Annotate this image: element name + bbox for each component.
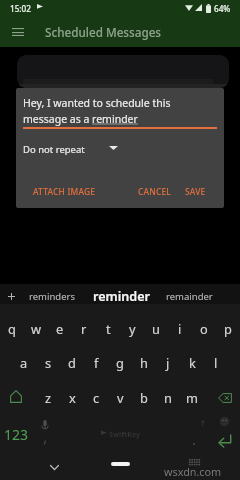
staticText: reminders bbox=[29, 290, 75, 303]
button[interactable]: o bbox=[192, 314, 216, 342]
button[interactable]: reminder bbox=[86, 286, 156, 306]
button[interactable]: h bbox=[132, 348, 156, 376]
button[interactable]: j bbox=[156, 348, 180, 376]
button[interactable]: Add to dictionary bbox=[3, 286, 19, 306]
button[interactable]: z bbox=[36, 383, 60, 411]
staticText: SAVE bbox=[185, 186, 206, 197]
button[interactable]: ATTACH IMAGE bbox=[23, 181, 105, 201]
button[interactable]: b bbox=[132, 383, 156, 411]
staticText: q bbox=[8, 320, 16, 337]
staticText: h bbox=[140, 354, 148, 371]
button[interactable]: y bbox=[120, 314, 144, 342]
button[interactable]: s bbox=[36, 348, 60, 376]
staticText: t bbox=[106, 320, 111, 337]
staticText: f bbox=[94, 354, 99, 371]
button[interactable]: n bbox=[156, 383, 180, 411]
staticText: m bbox=[186, 389, 198, 406]
staticText: r bbox=[81, 320, 87, 337]
button[interactable]: Open navigation drawer bbox=[5, 17, 31, 46]
button[interactable]: 123 bbox=[1, 420, 32, 448]
button[interactable]: c bbox=[84, 383, 108, 411]
button[interactable]: CANCEL bbox=[130, 181, 180, 201]
staticText: a bbox=[20, 354, 28, 371]
staticText: wsxdn.com bbox=[164, 464, 222, 479]
staticText: z bbox=[45, 389, 52, 406]
staticText: p bbox=[224, 320, 232, 337]
staticText: Hey, I wanted to schedule this message a… bbox=[23, 96, 171, 126]
staticText: 15:02 bbox=[10, 3, 31, 14]
button[interactable]: l bbox=[204, 348, 228, 376]
staticText: SwiftKey bbox=[109, 429, 141, 439]
staticText: s bbox=[45, 354, 52, 371]
staticText: remainder bbox=[166, 290, 213, 303]
button[interactable]: Home bbox=[111, 462, 130, 466]
button[interactable]: v bbox=[108, 383, 132, 411]
button[interactable]: Backspace bbox=[213, 384, 237, 412]
button[interactable]: q bbox=[0, 314, 24, 342]
button[interactable]: Hide keyboard bbox=[45, 454, 63, 480]
button[interactable]: e bbox=[48, 314, 72, 342]
staticText: 123 bbox=[4, 425, 29, 444]
button[interactable]: u bbox=[144, 314, 168, 342]
staticText: b bbox=[140, 389, 148, 406]
staticText: x bbox=[69, 389, 76, 406]
staticText: k bbox=[189, 354, 196, 371]
button[interactable]: d bbox=[60, 348, 84, 376]
button[interactable]: SAVE bbox=[177, 181, 213, 201]
staticText: c bbox=[93, 389, 100, 406]
button[interactable]: Voice input bbox=[33, 414, 57, 452]
staticText: n bbox=[164, 389, 172, 406]
staticText: 64% bbox=[214, 3, 231, 14]
button[interactable]: m bbox=[180, 383, 204, 411]
button[interactable]: t bbox=[96, 314, 120, 342]
staticText: v bbox=[117, 389, 124, 406]
button[interactable]: x bbox=[60, 383, 84, 411]
staticText: CANCEL bbox=[138, 186, 172, 197]
staticText: ? bbox=[201, 418, 205, 428]
button[interactable]: ? bbox=[182, 414, 206, 452]
button[interactable]: k bbox=[180, 348, 204, 376]
staticText: j bbox=[166, 354, 170, 371]
button[interactable]: Shift bbox=[4, 382, 28, 410]
button[interactable]: f bbox=[84, 348, 108, 376]
staticText: e bbox=[56, 320, 64, 337]
button[interactable]: Do not repeat bbox=[19, 139, 135, 161]
staticText: g bbox=[116, 354, 124, 371]
staticText: y bbox=[129, 320, 136, 337]
button[interactable]: w bbox=[24, 314, 48, 342]
staticText: u bbox=[152, 320, 160, 337]
staticText: reminder bbox=[93, 288, 150, 305]
staticText: w bbox=[31, 320, 42, 337]
staticText: Scheduled Messages bbox=[45, 24, 162, 40]
button[interactable]: r bbox=[72, 314, 96, 342]
button[interactable]: a bbox=[12, 348, 36, 376]
staticText: d bbox=[68, 354, 76, 371]
staticText: l bbox=[214, 354, 218, 371]
button[interactable]: Enter bbox=[212, 409, 237, 455]
button[interactable]: i bbox=[168, 314, 192, 342]
staticText: ATTACH IMAGE bbox=[33, 186, 96, 197]
button[interactable]: remainder bbox=[159, 286, 219, 306]
staticText: i bbox=[178, 320, 182, 337]
button[interactable]: g bbox=[108, 348, 132, 376]
button[interactable]: p bbox=[216, 314, 240, 342]
staticText: o bbox=[200, 320, 208, 337]
staticText: Do not repeat bbox=[23, 143, 85, 156]
button[interactable]: reminders bbox=[22, 286, 82, 306]
